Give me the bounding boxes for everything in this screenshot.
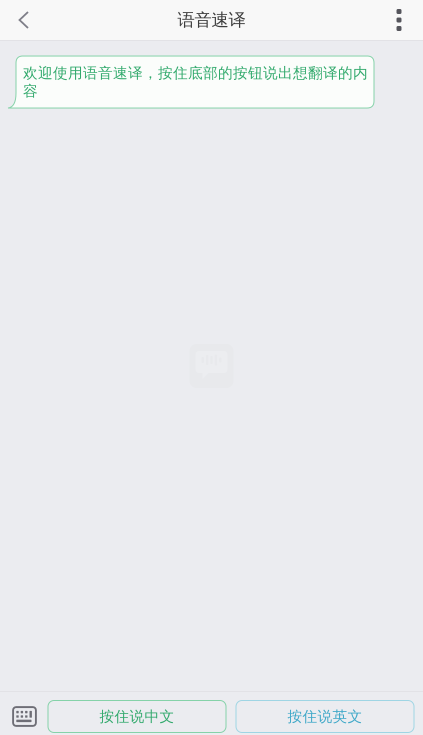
button[interactable]: Keyboard input: [11, 697, 38, 735]
staticText: 按住说英文: [287, 707, 362, 725]
staticText: 欢迎使用语音速译，按住底部的按钮说出想翻译的内容: [23, 64, 368, 100]
staticText: 语音速译: [177, 9, 245, 31]
button[interactable]: More options: [375, 0, 423, 40]
button[interactable]: Back: [0, 0, 48, 40]
button[interactable]: 按住说中文: [48, 700, 226, 732]
button[interactable]: 按住说英文: [236, 700, 414, 732]
staticText: 按住说中文: [99, 707, 174, 725]
